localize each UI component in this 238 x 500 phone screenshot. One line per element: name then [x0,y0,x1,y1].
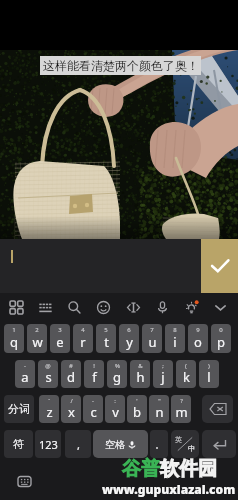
button[interactable]: Hide keyboard [206,293,235,322]
button[interactable]: Emoji [89,293,118,322]
staticText: @ [45,362,51,370]
staticText: r [80,333,86,351]
staticText: 5 [104,326,108,334]
staticText: a [21,368,29,386]
button[interactable]: Switch input language [171,430,199,458]
button[interactable]: 。 [150,430,168,458]
button[interactable]: % [107,360,127,388]
button[interactable]: - [83,395,103,423]
button[interactable]: 3 [50,324,70,353]
button[interactable]: , [65,430,91,458]
staticText: 8 [173,326,177,334]
staticText: n [155,403,164,421]
staticText: ` [48,397,50,405]
button[interactable]: 空格 [93,430,148,458]
staticText: m [175,403,188,421]
staticText: 谷普 [122,457,160,481]
button[interactable]: 7 [142,324,162,353]
button[interactable]: ` [39,395,59,423]
staticText: 123 [39,437,58,452]
button[interactable]: Delete [202,395,233,423]
button[interactable]: # [61,360,81,388]
staticText: " [158,397,161,405]
button[interactable]: " [149,395,169,423]
button[interactable]: ? [171,395,191,423]
staticText: y [126,333,133,351]
staticText: u [148,333,157,351]
staticText: % [115,362,120,370]
staticText: 7 [150,326,154,334]
staticText: www.gupuxlazal.com [102,481,236,497]
staticText: 0 [219,326,223,334]
staticText: 软件园 [160,457,217,481]
button[interactable]: : [105,395,125,423]
button[interactable]: 分词 [4,395,34,423]
button[interactable]: Keyboard layouts [31,293,60,322]
staticText: 这样能看清楚两个颜色了奥！ [43,58,199,73]
staticText: & [138,362,143,370]
staticText: 分词 [8,402,30,416]
staticText: # [69,362,73,370]
button[interactable]: / [61,395,81,423]
staticText: 6 [127,326,131,334]
button[interactable]: 2 [27,324,47,353]
button[interactable]: ' [127,395,147,423]
staticText: / [70,397,73,405]
staticText: ( [185,362,187,370]
button[interactable]: 5 [96,324,116,353]
button[interactable]: Keyboard settings [11,468,37,494]
staticText: 符 [13,437,24,451]
button[interactable]: Text editing [119,293,148,322]
button[interactable]: Search [60,293,89,322]
staticText: , [77,437,80,452]
button[interactable]: 123 [35,430,61,458]
button[interactable]: - [15,360,35,388]
staticText: - [92,397,94,405]
staticText: 中 [188,444,195,453]
staticText: x [68,403,75,421]
button[interactable]: Tips [177,293,206,322]
button[interactable]: Enter [202,430,236,458]
button[interactable]: @ [38,360,58,388]
staticText: i [173,333,177,351]
staticText: 4 [81,326,85,334]
staticText: e [56,333,64,351]
staticText: o [194,333,202,351]
button[interactable]: 0 [211,324,231,353]
staticText: d [67,368,75,386]
staticText: ; [162,362,164,370]
staticText: c [90,403,97,421]
staticText: f [92,368,97,386]
staticText: k [183,368,190,386]
button[interactable] [0,239,201,293]
button[interactable]: Apps [2,293,31,322]
button[interactable]: 1 [4,324,24,353]
staticText: s [45,368,52,386]
button[interactable]: 8 [165,324,185,353]
staticText: g [113,368,121,386]
button[interactable]: ! [84,360,104,388]
button[interactable]: 6 [119,324,139,353]
button[interactable]: Send [201,239,238,293]
button[interactable]: 4 [73,324,93,353]
button[interactable]: ; [153,360,173,388]
staticText: 1 [12,326,16,334]
staticText: ' [136,397,138,405]
button[interactable]: 符 [4,430,33,458]
staticText: z [46,403,53,421]
staticText: l [207,368,211,386]
staticText: 空格 [105,438,125,451]
staticText: 。 [155,439,164,450]
button[interactable]: & [130,360,150,388]
staticText: p [217,333,225,351]
staticText: j [161,368,165,386]
staticText: q [10,333,18,351]
staticText: b [133,403,141,421]
staticText: ) [208,362,210,370]
staticText: - [24,362,26,370]
button[interactable]: ( [176,360,196,388]
staticText: 9 [196,326,200,334]
button[interactable]: Voice input [148,293,177,322]
button[interactable]: ) [199,360,219,388]
button[interactable]: 9 [188,324,208,353]
